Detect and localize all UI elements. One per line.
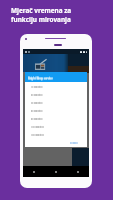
staticText: 45 minutes — [31, 102, 43, 105]
button[interactable]: Navigation — [23, 166, 45, 177]
staticText: 15 minutes — [31, 86, 43, 89]
button[interactable]: 90 minutes — [25, 114, 87, 122]
staticText: 90 minutes — [31, 117, 43, 120]
button[interactable]: Navigation — [45, 166, 67, 177]
staticText: 45 minutes — [31, 101, 43, 104]
button[interactable]: 120 minutes — [25, 122, 87, 130]
staticText: funkciju mirovanja — [11, 15, 71, 24]
staticText: 180 minutes — [31, 134, 44, 137]
button[interactable]: Navigation — [67, 166, 89, 177]
button[interactable]: 15 minutes — [25, 82, 87, 90]
staticText: 90 minutes — [31, 118, 43, 121]
button[interactable]: 60 minutes — [25, 106, 87, 114]
staticText: 120 minutes — [31, 125, 44, 128]
staticText: Bright Sleep service — [28, 76, 53, 79]
staticText: 180 minutes — [31, 133, 44, 136]
staticText: 15 minutes — [31, 85, 43, 88]
staticText: Mjerač vremena za — [11, 6, 72, 15]
staticText: CANCEL — [70, 141, 78, 144]
staticText: CANCEL — [70, 142, 78, 145]
staticText: 60 minutes — [31, 109, 43, 112]
staticText: 30 minutes — [31, 93, 43, 96]
button[interactable]: 180 minutes — [25, 130, 87, 138]
button[interactable]: CANCEL — [67, 141, 87, 144]
staticText: 120 minutes — [31, 126, 44, 129]
button[interactable]: 45 minutes — [25, 98, 87, 106]
staticText: 60 minutes — [31, 110, 43, 113]
staticText: 30 minutes — [31, 94, 43, 97]
staticText: Bright Sleep service — [28, 77, 53, 80]
button[interactable]: Bright Sleep service — [25, 72, 87, 82]
button[interactable]: 30 minutes — [25, 90, 87, 98]
